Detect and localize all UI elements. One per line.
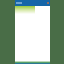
button[interactable]: Profile xyxy=(15,0,50,6)
